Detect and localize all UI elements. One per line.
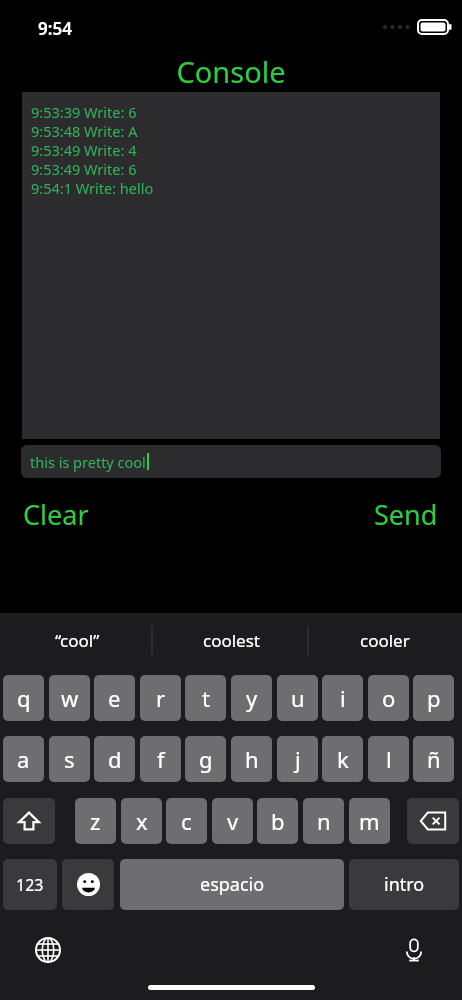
staticText: espacio [200, 872, 265, 897]
button[interactable]: espacio [120, 859, 344, 910]
staticText: i [340, 683, 346, 713]
staticText: ñ [427, 744, 441, 774]
staticText: c [181, 806, 192, 836]
button[interactable]: i [322, 675, 363, 721]
button[interactable]: intro [349, 859, 459, 910]
staticText: cooler [360, 629, 410, 652]
staticText: this is pretty cool [30, 452, 146, 472]
button[interactable]: this is pretty cool [21, 445, 441, 478]
button[interactable]: n [303, 798, 344, 844]
staticText: Console [0, 52, 462, 91]
button[interactable]: g [185, 736, 226, 782]
button[interactable]: w [49, 675, 90, 721]
staticText: n [317, 806, 331, 836]
button[interactable]: y [231, 675, 272, 721]
staticText: e [108, 683, 121, 713]
button[interactable]: t [185, 675, 226, 721]
staticText: “cool” [55, 629, 100, 652]
staticText: coolest [203, 629, 260, 652]
button[interactable]: Backspace [407, 798, 459, 844]
button[interactable]: ñ [413, 736, 454, 782]
button[interactable]: 123 [3, 859, 57, 910]
staticText: d [108, 744, 122, 774]
staticText: m [359, 806, 380, 836]
staticText: 9:53:49 Write: 4 [31, 140, 137, 159]
staticText: 123 [16, 874, 44, 896]
button[interactable]: “cool” [0, 613, 154, 667]
staticText: r [156, 683, 166, 713]
button[interactable]: Clear [21, 496, 91, 533]
button[interactable]: d [94, 736, 135, 782]
button[interactable]: u [277, 675, 318, 721]
staticText: y [246, 683, 258, 713]
button[interactable]: o [368, 675, 409, 721]
staticText: 9:54:1 Write: hello [31, 178, 154, 197]
staticText: w [61, 683, 79, 713]
button[interactable]: e [94, 675, 135, 721]
button[interactable]: v [212, 798, 253, 844]
staticText: q [17, 683, 31, 713]
staticText: z [90, 806, 101, 836]
staticText: 9:53:49 Write: 6 [31, 159, 137, 178]
button[interactable]: Dictation [394, 930, 434, 970]
button[interactable]: coolest [154, 613, 308, 667]
button[interactable]: a [3, 736, 44, 782]
staticText: s [64, 744, 75, 774]
staticText: x [136, 806, 148, 836]
button[interactable]: Shift [3, 798, 55, 844]
staticText: h [245, 744, 259, 774]
button[interactable]: c [166, 798, 207, 844]
staticText: v [227, 806, 239, 836]
button[interactable]: z [75, 798, 116, 844]
staticText: t [202, 683, 210, 713]
button[interactable]: p [413, 675, 454, 721]
staticText: o [382, 683, 396, 713]
button[interactable]: Send [372, 496, 440, 533]
button[interactable]: x [121, 798, 162, 844]
staticText: p [427, 683, 441, 713]
staticText: 9:54 [38, 17, 72, 40]
button[interactable]: h [231, 736, 272, 782]
staticText: 9:53:39 Write: 6 [31, 102, 137, 121]
button[interactable]: s [49, 736, 90, 782]
button[interactable]: cooler [308, 613, 462, 667]
staticText: a [17, 744, 30, 774]
button[interactable]: f [140, 736, 181, 782]
button[interactable]: Emoji [62, 859, 114, 910]
button[interactable]: q [3, 675, 44, 721]
button[interactable]: l [368, 736, 409, 782]
button[interactable]: r [140, 675, 181, 721]
staticText: l [386, 744, 392, 774]
button[interactable]: Change keyboard language [28, 930, 68, 970]
staticText: b [271, 806, 285, 836]
staticText: k [337, 744, 349, 774]
staticText: g [199, 744, 213, 774]
button[interactable]: b [257, 798, 298, 844]
button[interactable]: k [322, 736, 363, 782]
staticText: intro [384, 872, 425, 897]
button[interactable]: j [277, 736, 318, 782]
staticText: u [291, 683, 305, 713]
staticText: Send [374, 496, 438, 533]
staticText: f [157, 744, 165, 774]
staticText: j [295, 744, 301, 774]
staticText: 9:53:48 Write: A [31, 121, 138, 140]
staticText: Clear [23, 496, 89, 533]
button[interactable]: m [349, 798, 390, 844]
